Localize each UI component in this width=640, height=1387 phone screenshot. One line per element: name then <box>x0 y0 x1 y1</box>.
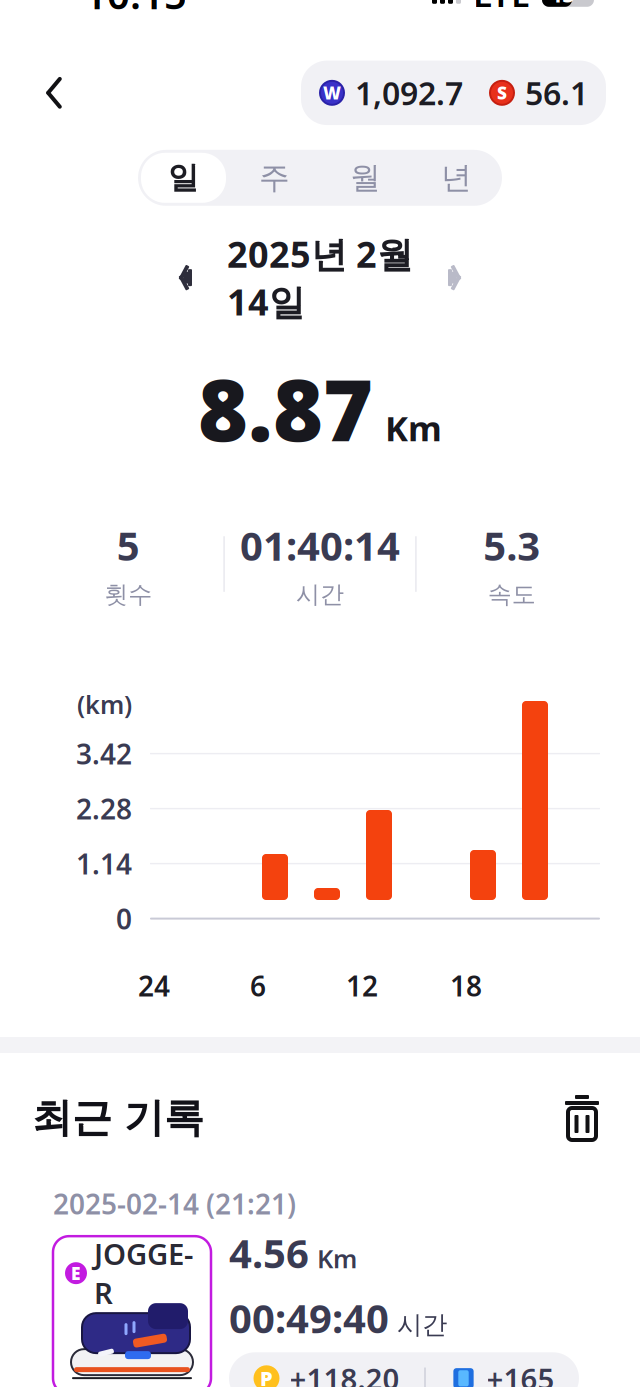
staticText: 월 <box>350 159 381 197</box>
staticText: (km) <box>77 687 132 721</box>
staticText: 5.3 <box>483 519 540 572</box>
staticText: S <box>497 81 507 104</box>
staticText: 1.14 <box>76 845 132 882</box>
staticText: Km <box>385 405 442 451</box>
staticText: P <box>260 1365 273 1387</box>
button[interactable]: 2025-02-14 (21:21) <box>35 1167 605 1387</box>
staticText: 3.42 <box>76 735 132 772</box>
button[interactable]: Previous day <box>159 258 205 298</box>
staticText: 시간 <box>397 1309 447 1340</box>
staticText: 횟수 <box>104 580 152 609</box>
staticText: 주 <box>259 159 290 197</box>
button[interactable]: 주 <box>229 150 320 206</box>
button[interactable]: Back <box>26 65 82 121</box>
staticText: 2.28 <box>76 790 132 827</box>
staticText: 18 <box>450 967 482 1004</box>
staticText: 2025년 2월 14일 <box>227 230 413 325</box>
button[interactable]: 일 <box>138 150 229 206</box>
staticText: W <box>323 81 341 104</box>
staticText: 년 <box>441 159 472 197</box>
staticText: 56.1 <box>525 72 588 114</box>
staticText: 01:40:14 <box>240 519 400 572</box>
staticText: E <box>71 1262 81 1285</box>
button[interactable]: Delete records <box>554 1090 610 1146</box>
staticText: 일 <box>168 159 199 197</box>
button[interactable]: 월 <box>320 150 411 206</box>
staticText: 00:49:40 <box>229 1291 389 1344</box>
staticText: +118.20 <box>289 1359 399 1387</box>
staticText: 24 <box>138 967 170 1004</box>
staticText: +165 <box>486 1359 554 1387</box>
staticText: 시간 <box>296 580 344 609</box>
button[interactable]: 년 <box>411 150 502 206</box>
staticText: 최근 기록 <box>32 1093 204 1142</box>
staticText: LTE <box>473 0 530 17</box>
staticText: 45 <box>549 0 575 9</box>
staticText: 8.87 <box>198 351 373 465</box>
staticText: 1,092.7 <box>355 72 463 114</box>
button[interactable]: W <box>301 61 606 125</box>
staticText: 0 <box>116 900 132 937</box>
staticText: 속도 <box>488 580 536 609</box>
staticText: Km <box>317 1241 357 1275</box>
button[interactable]: Next day <box>435 258 481 298</box>
staticText: 2025-02-14 (21:21) <box>53 1185 296 1222</box>
staticText: 5 <box>117 519 140 572</box>
staticText: 6 <box>250 967 266 1004</box>
staticText: 4.56 <box>229 1226 309 1279</box>
staticText: 10:15 <box>84 0 187 20</box>
staticText: 12 <box>346 967 378 1004</box>
staticText: JOGGER <box>94 1234 193 1312</box>
